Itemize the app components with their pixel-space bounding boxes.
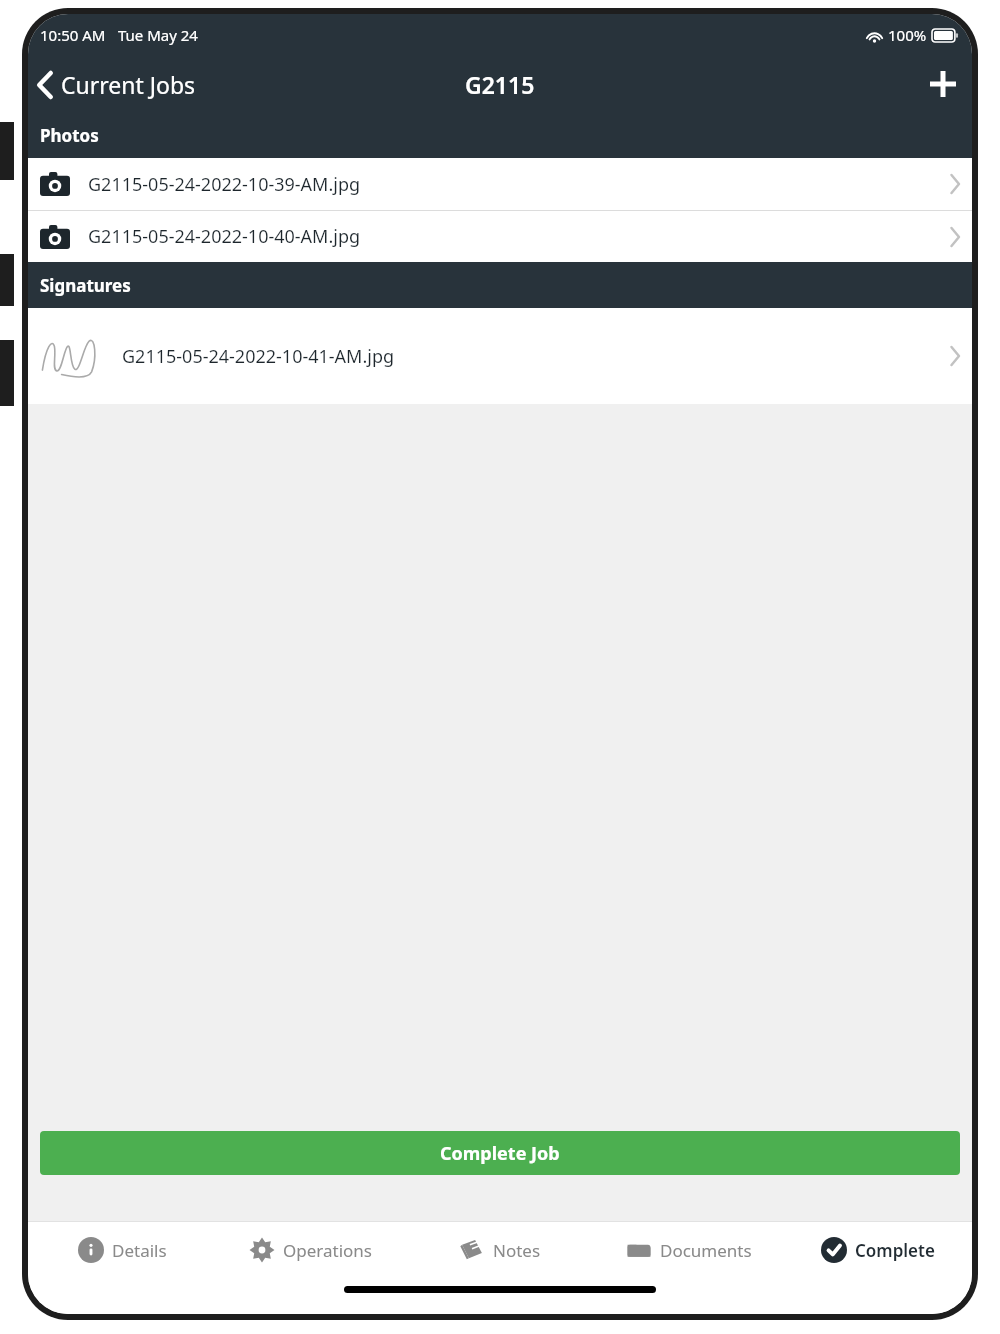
staticText: Tue May 24	[118, 25, 198, 45]
staticText: Notes	[493, 1239, 541, 1262]
staticText: 10:50 AM	[40, 25, 106, 45]
staticText: G2115-05-24-2022-10-39-AM.jpg	[88, 172, 361, 197]
staticText: G2115	[465, 69, 535, 100]
button[interactable]: Add	[914, 61, 972, 107]
staticText: Documents	[660, 1239, 752, 1262]
staticText: Operations	[283, 1239, 372, 1262]
button[interactable]: Details	[28, 1222, 216, 1278]
staticText: G2115-05-24-2022-10-40-AM.jpg	[88, 224, 361, 249]
button[interactable]: G2115-05-24-2022-10-41-AM.jpg	[28, 308, 972, 404]
staticText: Signatures	[40, 274, 131, 297]
button[interactable]: Notes	[405, 1222, 594, 1278]
staticText: Complete Job	[440, 1141, 560, 1166]
staticText: G2115-05-24-2022-10-41-AM.jpg	[122, 344, 395, 369]
button[interactable]: Current Jobs	[28, 63, 206, 106]
button[interactable]: Complete	[783, 1222, 972, 1278]
staticText: 100%	[888, 25, 927, 45]
staticText: Photos	[40, 124, 99, 147]
button[interactable]: Complete Job	[40, 1131, 960, 1175]
staticText: Current Jobs	[61, 69, 196, 100]
staticText: Details	[112, 1239, 167, 1262]
button[interactable]: G2115-05-24-2022-10-39-AM.jpg	[28, 158, 972, 211]
button[interactable]: Operations	[216, 1222, 405, 1278]
button[interactable]: Documents	[594, 1222, 783, 1278]
staticText: Complete	[855, 1239, 935, 1262]
button[interactable]: G2115-05-24-2022-10-40-AM.jpg	[28, 211, 972, 262]
